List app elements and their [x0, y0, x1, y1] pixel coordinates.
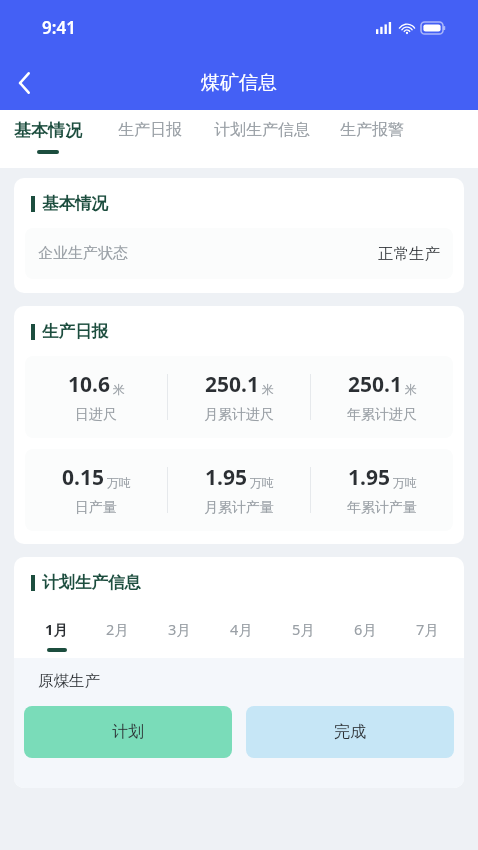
button[interactable]: 生产报警 — [340, 110, 404, 168]
staticText: 米 — [113, 382, 125, 397]
staticText: 月累计产量 — [204, 499, 274, 517]
button[interactable]: 基本情况 — [14, 110, 82, 168]
staticText: 企业生产状态 — [38, 244, 128, 263]
staticText: 米 — [262, 382, 274, 397]
button[interactable]: 4月 — [210, 619, 272, 648]
staticText: 4月 — [230, 619, 253, 639]
button[interactable]: 2月 — [87, 619, 148, 648]
button[interactable]: 0.15 — [25, 463, 167, 517]
staticText: 1.95 — [348, 463, 390, 492]
button[interactable]: 企业生产状态 — [25, 228, 453, 279]
staticText: 生产日报 — [42, 321, 108, 342]
button[interactable]: 250.1 — [311, 370, 453, 424]
button[interactable]: 计划生产信息 — [214, 110, 310, 168]
staticText: 5月 — [292, 619, 315, 639]
staticText: 煤矿信息 — [201, 71, 277, 95]
staticText: 0.15 — [62, 463, 104, 492]
staticText: 万吨 — [393, 475, 417, 490]
button[interactable]: 7月 — [396, 619, 458, 648]
staticText: 10.6 — [68, 370, 110, 399]
staticText: 3月 — [168, 619, 191, 639]
staticText: 1.95 — [205, 463, 247, 492]
button[interactable]: 3月 — [148, 619, 210, 648]
button[interactable]: 1月 — [26, 619, 87, 652]
staticText: 1月 — [45, 619, 68, 639]
staticText: 7月 — [416, 619, 439, 639]
button[interactable]: 10.6 — [25, 370, 167, 424]
staticText: 9:41 — [42, 16, 76, 39]
staticText: 计划生产信息 — [214, 120, 310, 140]
button[interactable]: 计划 — [24, 706, 232, 758]
button[interactable]: 生产日报 — [118, 110, 182, 168]
staticText: 计划 — [112, 722, 144, 742]
button[interactable]: 1.95 — [311, 463, 453, 517]
staticText: 年累计产量 — [347, 499, 417, 517]
staticText: 基本情况 — [42, 193, 108, 214]
staticText: 生产报警 — [340, 120, 404, 140]
staticText: 生产日报 — [118, 120, 182, 140]
button[interactable]: 1.95 — [168, 463, 310, 517]
button[interactable]: Back — [0, 59, 48, 107]
button[interactable]: 5月 — [272, 619, 334, 648]
staticText: 完成 — [334, 722, 366, 742]
staticText: 万吨 — [107, 475, 131, 490]
staticText: 基本情况 — [14, 120, 82, 141]
button[interactable]: 6月 — [334, 619, 396, 648]
staticText: 年累计进尺 — [347, 406, 417, 424]
button[interactable]: 250.1 — [168, 370, 310, 424]
staticText: 日产量 — [75, 499, 117, 517]
staticText: 2月 — [106, 619, 129, 639]
button[interactable]: 完成 — [246, 706, 454, 758]
staticText: 米 — [405, 382, 417, 397]
staticText: 6月 — [354, 619, 377, 639]
staticText: 250.1 — [348, 370, 402, 399]
staticText: 万吨 — [250, 475, 274, 490]
staticText: 原煤生产 — [38, 671, 100, 691]
staticText: 正常生产 — [378, 244, 440, 264]
staticText: 250.1 — [205, 370, 259, 399]
staticText: 计划生产信息 — [42, 572, 141, 593]
staticText: 日进尺 — [75, 406, 117, 424]
staticText: 月累计进尺 — [204, 406, 274, 424]
